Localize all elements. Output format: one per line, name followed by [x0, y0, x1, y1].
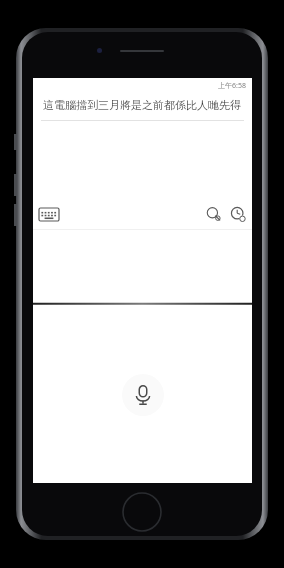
- button[interactable]: Edit: [206, 206, 222, 222]
- staticText: 這電腦擋到三月將是之前都係比人哋先得: [43, 98, 242, 112]
- staticText: 上午6:58: [218, 81, 246, 91]
- button[interactable]: Keyboard: [39, 208, 59, 221]
- button[interactable]: Microphone: [122, 374, 164, 416]
- button[interactable]: History: [230, 206, 246, 222]
